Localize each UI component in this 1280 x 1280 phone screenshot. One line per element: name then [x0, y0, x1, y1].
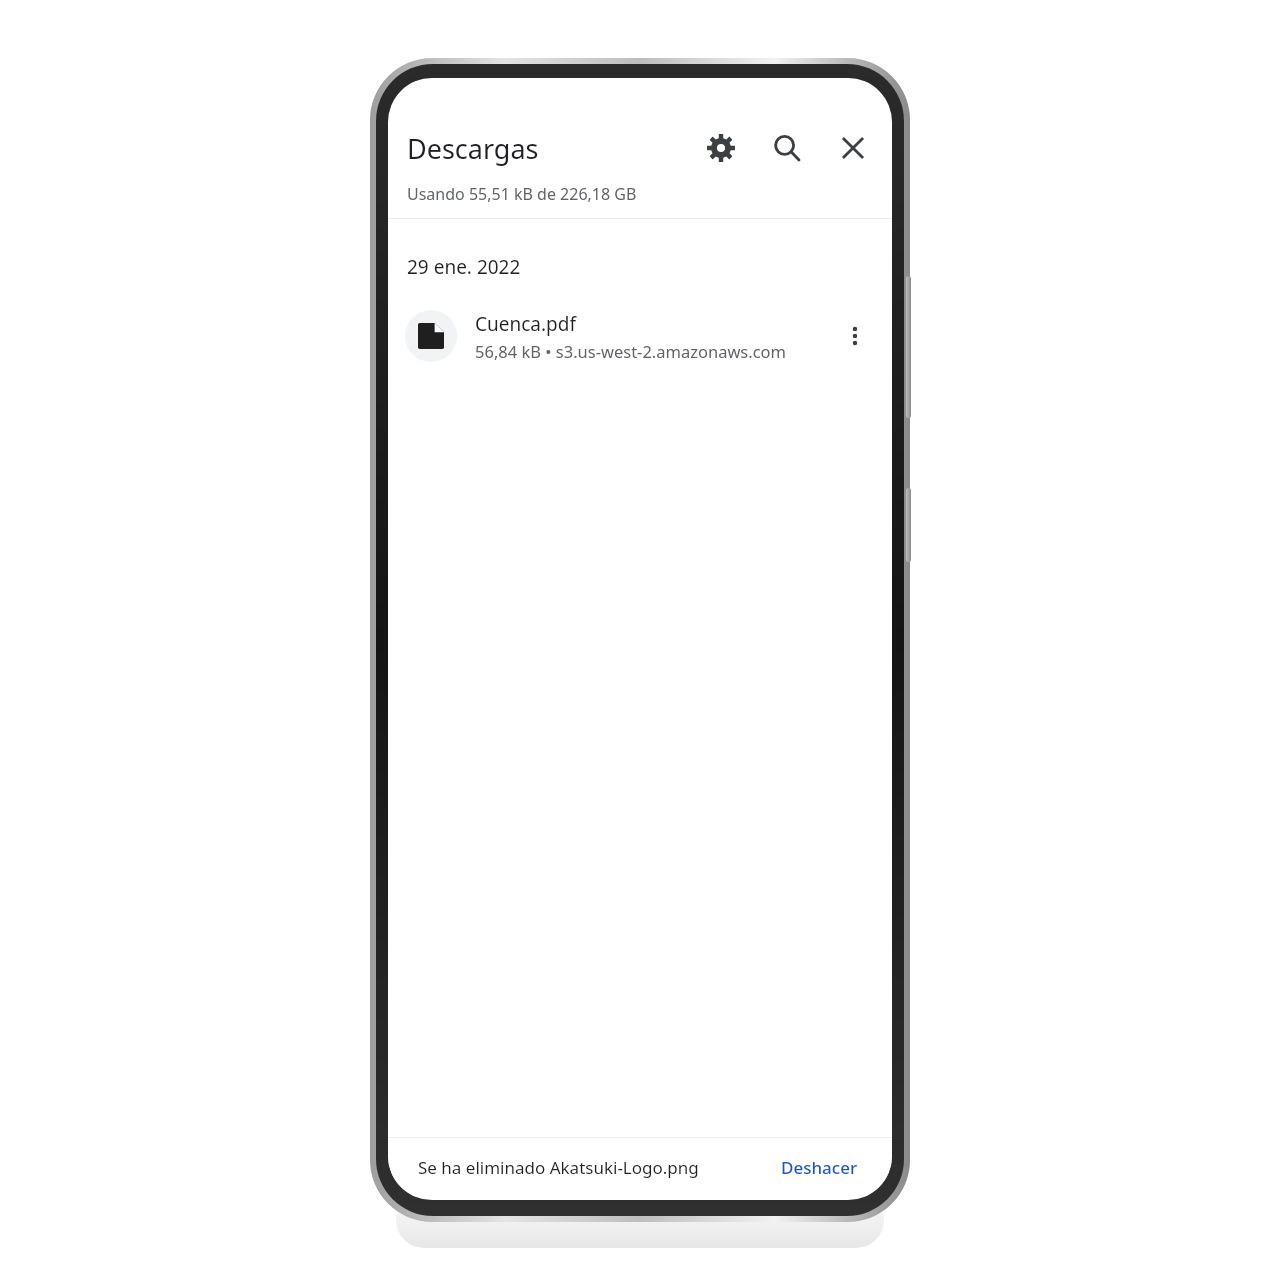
button[interactable]: Deshacer: [777, 1152, 862, 1183]
staticText: Usando 55,51 kB de 226,18 GB: [407, 183, 637, 205]
staticText: Se ha eliminado Akatsuki-Logo.png: [418, 1156, 699, 1179]
staticText: 56,84 kB • s3.us-west-2.amazonaws.com: [475, 340, 787, 362]
staticText: Deshacer: [781, 1156, 858, 1179]
staticText: 29 ene. 2022: [407, 254, 521, 280]
button[interactable]: Settings: [698, 125, 744, 171]
button[interactable]: Cuenca.pdf: [388, 300, 892, 372]
staticText: Cuenca.pdf: [475, 311, 576, 337]
button[interactable]: Search: [764, 125, 810, 171]
button[interactable]: More options: [832, 313, 878, 359]
staticText: Descargas: [407, 130, 539, 167]
button[interactable]: Close: [830, 125, 876, 171]
